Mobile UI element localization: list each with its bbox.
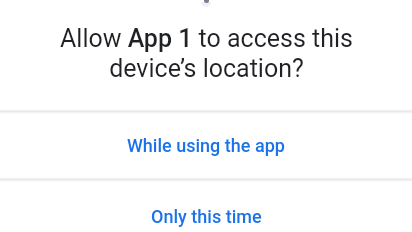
staticText: While using the app [127,135,285,156]
button[interactable]: Only this time [0,182,412,232]
staticText: Only this time [151,206,262,227]
button[interactable]: While using the app [0,114,412,177]
staticText: Allow App 1 to access this device’s loca… [60,24,353,83]
